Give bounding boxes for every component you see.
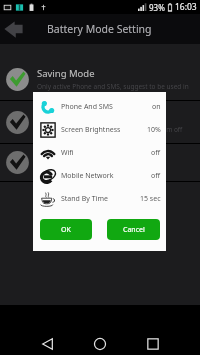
staticText: Phone And SMS (61, 102, 113, 112)
button[interactable]: Normal Mode (0, 101, 200, 143)
staticText: off (151, 148, 161, 158)
button[interactable]: Home (85, 329, 115, 355)
button[interactable]: Wifi (33, 141, 166, 164)
button[interactable]: Cancel (107, 219, 160, 240)
staticText: Performance Mode (37, 151, 124, 164)
staticText: off (151, 171, 161, 181)
staticText: Mobile Network (61, 171, 114, 181)
staticText: Battery Mode Setting (47, 22, 152, 36)
button[interactable]: OK (40, 219, 92, 240)
button[interactable]: Navigate up (2, 14, 24, 44)
staticText: Phone, SMS, Wifi on, Mobile network syst… (37, 125, 183, 134)
staticText: Normal Mode (37, 110, 99, 123)
button[interactable]: Phone And SMS (33, 95, 166, 118)
button[interactable]: Back (33, 329, 63, 355)
staticText: Wifi (61, 148, 74, 158)
staticText: 93% (149, 2, 165, 13)
button[interactable]: Recent apps (138, 329, 168, 355)
staticText: 15 sec (140, 194, 161, 204)
staticText: 10% (147, 125, 161, 135)
button[interactable]: Stand By Time (33, 187, 166, 210)
staticText: All functions on (37, 166, 85, 175)
button[interactable]: Screen Brightness (33, 118, 166, 141)
staticText: Only active Phone and SMS, suggest to be… (37, 82, 189, 91)
staticText: on (152, 102, 161, 112)
staticText: Cancel (123, 225, 145, 235)
staticText: Screen Brightness (61, 125, 121, 135)
staticText: Stand By Time (61, 194, 108, 204)
button[interactable]: Saving Mode (0, 58, 200, 100)
staticText: Saving Mode (37, 67, 95, 80)
staticText: OK (61, 225, 71, 235)
button[interactable]: Performance Mode (0, 144, 200, 181)
staticText: 16:03 (175, 1, 197, 13)
button[interactable]: Mobile Network (33, 164, 166, 187)
